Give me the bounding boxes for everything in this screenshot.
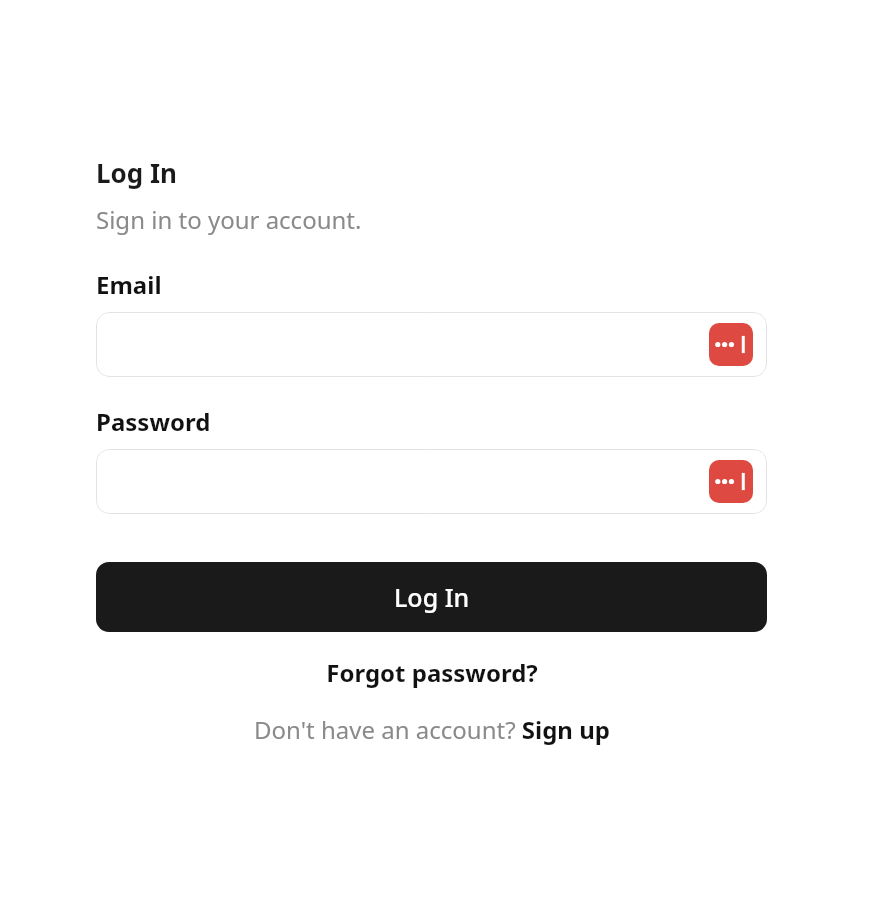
button[interactable]: Show password <box>709 323 753 366</box>
staticText: Don't have an account? Sign up <box>254 713 610 746</box>
button[interactable]: Show password <box>96 312 767 377</box>
staticText: Forgot password? <box>326 656 538 689</box>
button[interactable]: Show password <box>709 460 753 503</box>
button[interactable]: Don't have an account? Sign up <box>96 713 767 746</box>
button[interactable]: Show password <box>96 449 767 514</box>
staticText: Sign in to your account. <box>96 203 362 236</box>
staticText: Log In <box>394 580 470 614</box>
button[interactable]: Log In <box>96 562 767 632</box>
staticText: Password <box>96 405 211 438</box>
button[interactable]: Forgot password? <box>96 656 767 689</box>
staticText: Log In <box>96 155 177 190</box>
staticText: Email <box>96 268 162 301</box>
